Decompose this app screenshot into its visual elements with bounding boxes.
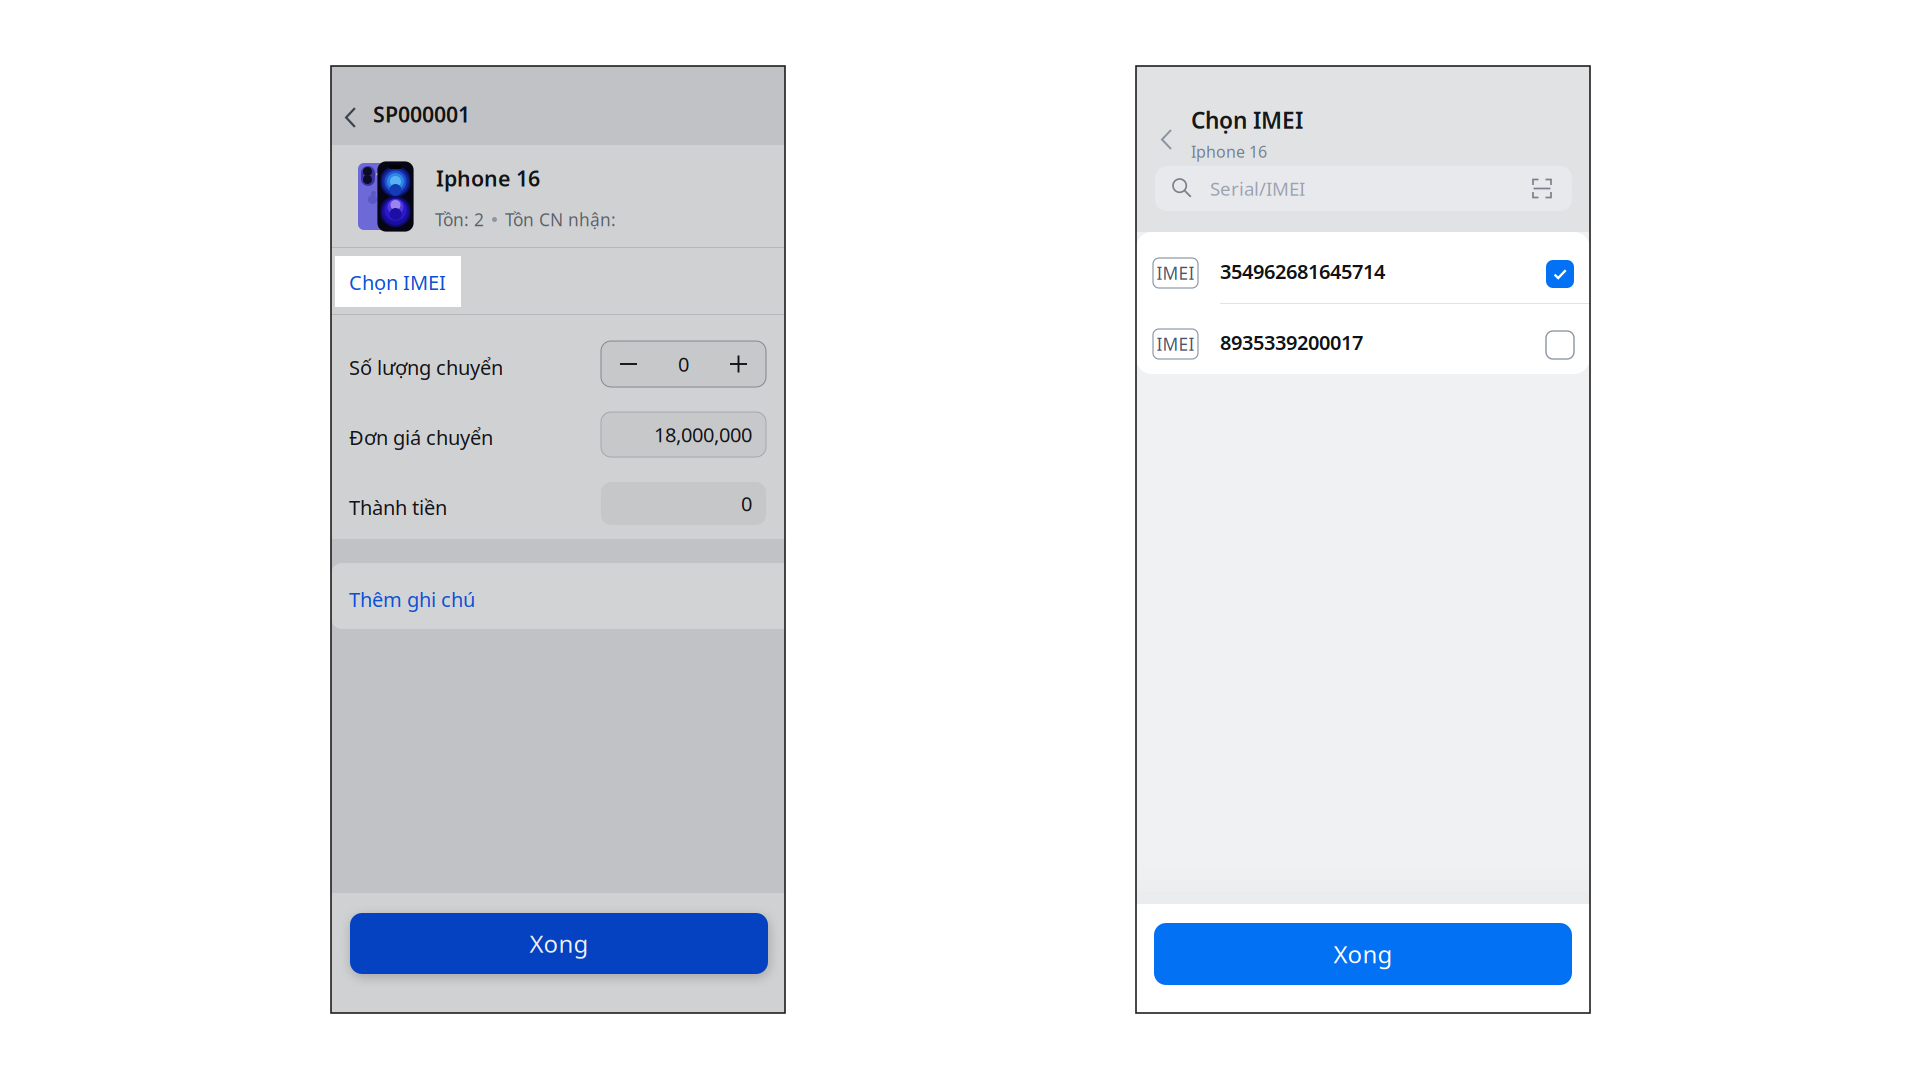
staticText: Xong	[529, 928, 588, 959]
button[interactable]: Decrease quantity	[601, 341, 656, 387]
staticText: Iphone 16	[436, 164, 540, 192]
button[interactable]: Scan barcode	[1520, 166, 1564, 211]
staticText: Iphone 16	[1191, 141, 1267, 162]
staticText: IMEI	[1156, 332, 1194, 355]
staticText: Thêm ghi chú	[349, 586, 475, 613]
staticText: Tồn CN nhận:	[505, 208, 616, 231]
staticText: Xong	[1333, 938, 1392, 970]
staticText: Chọn IMEI	[1191, 105, 1303, 135]
staticText: Đơn giá chuyển	[349, 424, 493, 451]
button[interactable]: Thêm ghi chú	[331, 563, 785, 629]
staticText: Serial/IMEI	[1210, 176, 1305, 201]
button[interactable]: Xong	[1154, 923, 1572, 985]
staticText: 8935339200017	[1220, 329, 1363, 356]
staticText: 354962681645714	[1220, 258, 1385, 285]
button[interactable]: Back	[339, 99, 377, 135]
button[interactable]: Increase quantity	[711, 341, 766, 387]
staticText: 18,000,000	[654, 421, 752, 448]
button[interactable]: IMEI	[1136, 232, 1590, 303]
button[interactable]: Back	[1156, 122, 1190, 158]
staticText: Chọn IMEI	[349, 269, 446, 296]
staticText: 0	[741, 490, 752, 517]
staticText: Tồn: 2	[435, 208, 484, 231]
button[interactable]: IMEI	[1136, 303, 1590, 374]
button[interactable]: Xong	[350, 913, 768, 974]
staticText: Thành tiền	[349, 494, 447, 521]
staticText: 0	[678, 351, 689, 377]
button[interactable]: Chọn IMEI	[335, 256, 461, 307]
staticText: SP000001	[373, 100, 470, 128]
staticText: Số lượng chuyển	[349, 354, 503, 381]
staticText: IMEI	[1156, 261, 1194, 284]
